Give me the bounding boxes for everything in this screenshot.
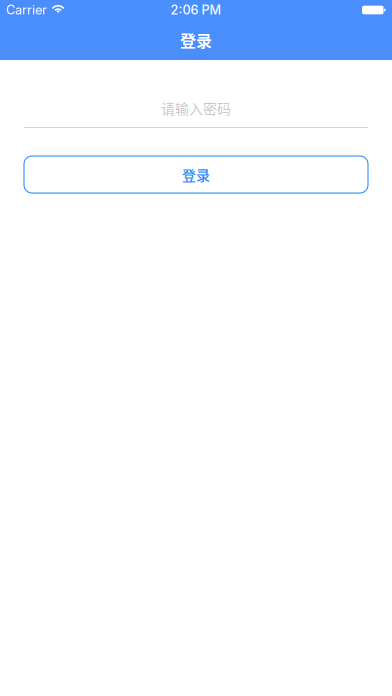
staticText: 登录: [182, 164, 210, 185]
staticText: 2:06 PM: [170, 2, 221, 18]
staticText: 请输入密码: [161, 98, 231, 118]
staticText: Carrier: [6, 2, 47, 18]
button[interactable]: 请输入密码: [24, 89, 368, 128]
staticText: 登录: [180, 28, 212, 52]
button[interactable]: 登录: [24, 156, 368, 193]
